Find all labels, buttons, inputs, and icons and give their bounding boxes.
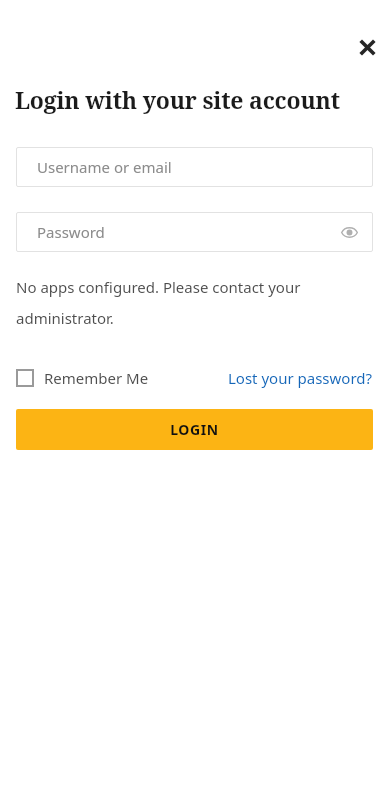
staticText: Username or email xyxy=(37,157,172,177)
button[interactable]: Remember Me xyxy=(16,368,149,388)
staticText: Password xyxy=(37,222,105,242)
staticText: Lost your password? xyxy=(228,368,373,388)
button[interactable]: Lost your password? xyxy=(228,368,373,388)
button[interactable]: Username or email xyxy=(16,147,373,187)
staticText: administrator. xyxy=(16,308,114,328)
staticText: No apps configured. Please contact your xyxy=(16,277,301,297)
button[interactable]: Password xyxy=(16,212,373,252)
button[interactable]: Close xyxy=(349,29,385,65)
staticText: LOGIN xyxy=(170,420,219,439)
staticText: Remember Me xyxy=(44,368,149,388)
button[interactable]: Show password xyxy=(336,219,362,245)
button[interactable]: LOGIN xyxy=(16,409,373,450)
staticText: Login with your site account xyxy=(15,84,340,115)
